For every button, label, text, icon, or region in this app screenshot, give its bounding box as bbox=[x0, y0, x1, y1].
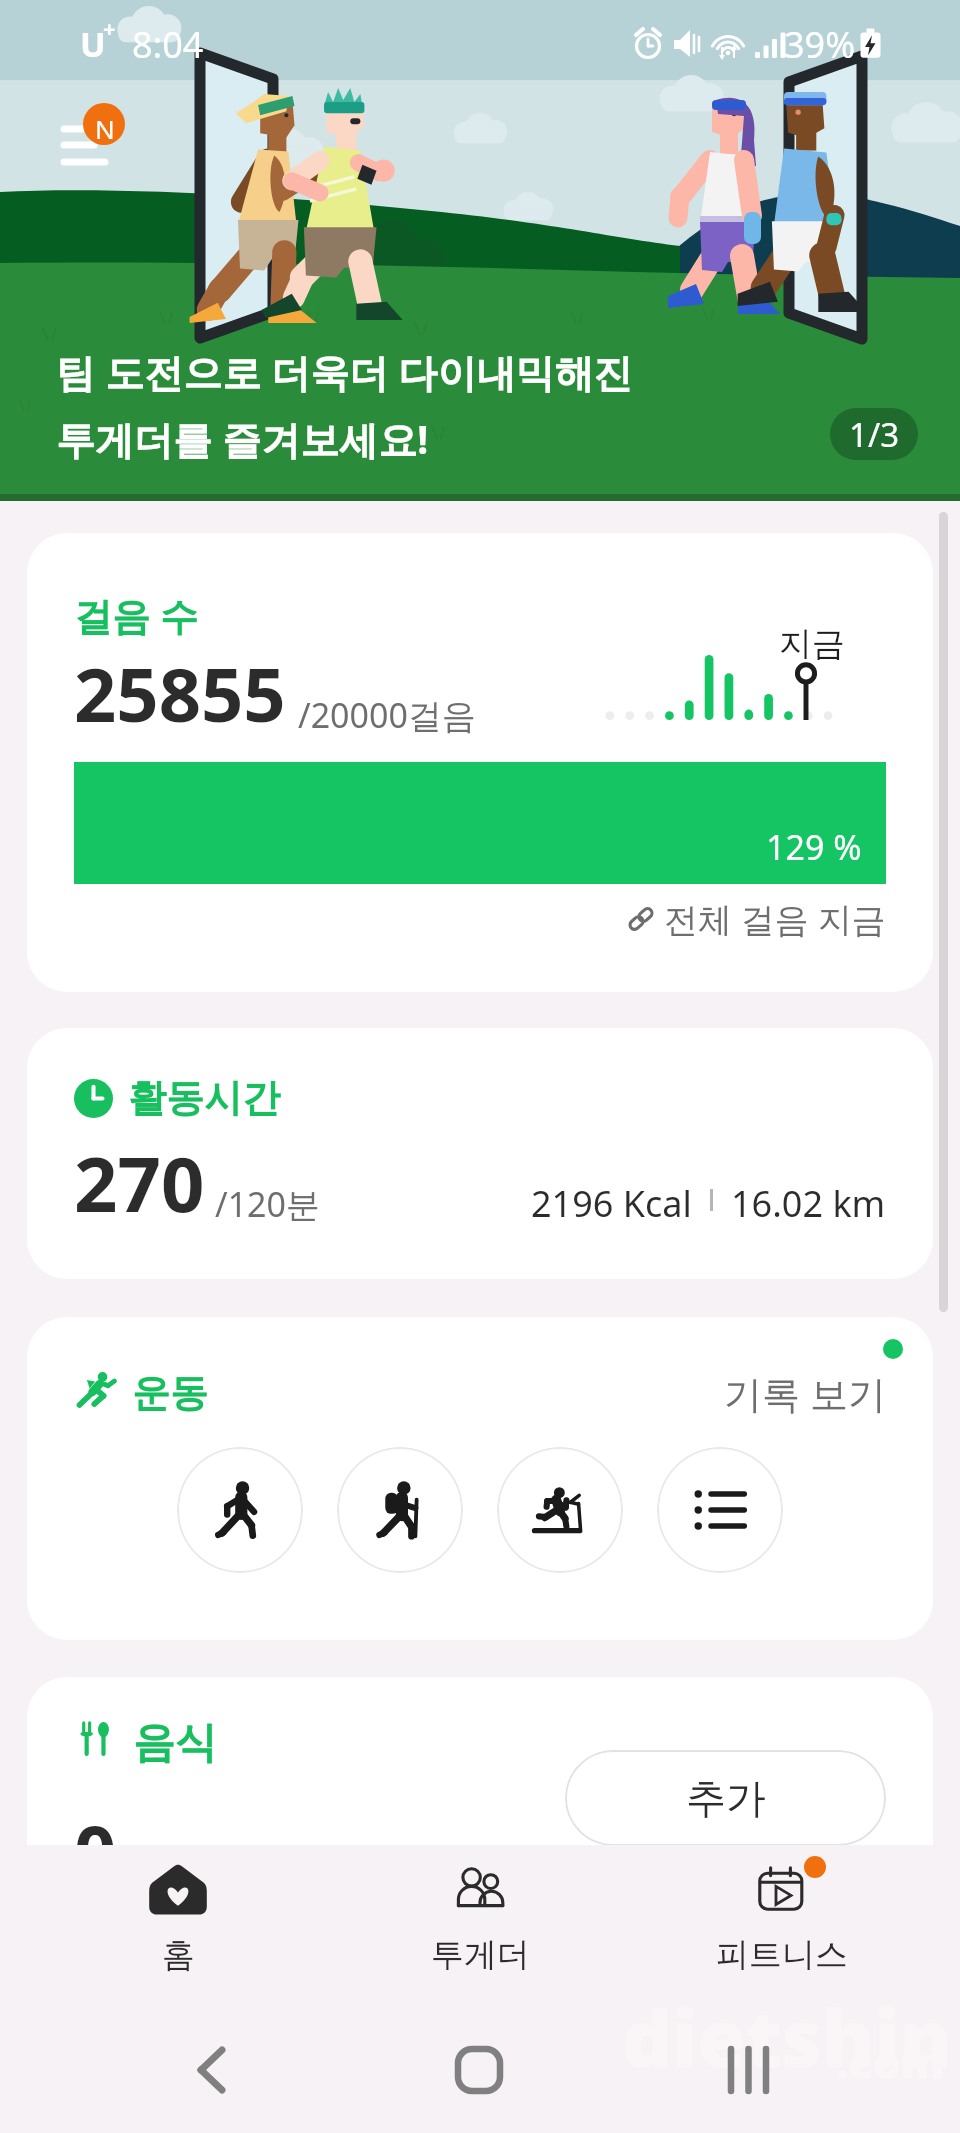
button[interactable]: Home bbox=[78, 1860, 278, 1976]
staticText: 기록 보기 bbox=[724, 1367, 886, 1419]
button[interactable]: 음식 bbox=[27, 1677, 933, 2077]
button[interactable]: 1/3 bbox=[830, 408, 918, 460]
staticText: U bbox=[80, 21, 106, 67]
button[interactable]: Menu bbox=[58, 98, 134, 176]
button[interactable]: Hiking bbox=[337, 1447, 463, 1573]
staticText: 지금 bbox=[779, 623, 845, 665]
staticText: 투게더 bbox=[431, 1934, 530, 1976]
staticText: 걸음 수 bbox=[74, 589, 198, 641]
staticText: 활동시간 bbox=[128, 1074, 280, 1122]
staticText: 팀 도전으로 더욱더 다이내믹해진 bbox=[56, 345, 633, 398]
staticText: 25855 bbox=[74, 643, 286, 744]
button[interactable]: 기록 보기 bbox=[724, 1367, 886, 1419]
staticText: /120분 bbox=[215, 1181, 320, 1227]
button[interactable]: Fitness bbox=[682, 1860, 882, 1976]
staticText: 0 bbox=[74, 1801, 117, 1902]
button[interactable]: 활동시간 bbox=[27, 1028, 933, 1279]
staticText: 8:04 bbox=[132, 20, 204, 69]
staticText: 2196 Kcal bbox=[531, 1179, 692, 1228]
staticText: 운동 bbox=[132, 1369, 208, 1417]
staticText: 전체 걸음 지금 bbox=[664, 896, 886, 942]
button[interactable]: Together bbox=[380, 1860, 580, 1976]
staticText: 129 % bbox=[766, 824, 862, 870]
staticText: N bbox=[95, 111, 115, 146]
button[interactable]: Treadmill bbox=[497, 1447, 623, 1573]
staticText: 투게더를 즐겨보세요! bbox=[56, 412, 429, 465]
staticText: 음식 bbox=[133, 1717, 217, 1770]
staticText: + bbox=[103, 13, 116, 43]
staticText: 홈 bbox=[162, 1934, 195, 1976]
staticText: 1/3 bbox=[849, 412, 900, 457]
staticText: 피트니스 bbox=[716, 1934, 848, 1976]
staticText: 16.02 km bbox=[731, 1179, 886, 1228]
button[interactable]: More exercises bbox=[657, 1447, 783, 1573]
staticText: 추가 bbox=[686, 1773, 766, 1823]
button[interactable]: 전체 걸음 지금 bbox=[626, 896, 886, 942]
staticText: 39% bbox=[784, 20, 856, 69]
staticText: /20000걸음 bbox=[298, 692, 476, 738]
button[interactable]: Walking bbox=[177, 1447, 303, 1573]
button[interactable]: 운동 bbox=[27, 1317, 933, 1640]
button[interactable]: 추가 bbox=[565, 1750, 886, 1846]
staticText: 270 bbox=[74, 1131, 205, 1235]
staticText: dietshin bbox=[622, 1984, 952, 2090]
button[interactable]: 걸음 수 bbox=[27, 533, 933, 992]
